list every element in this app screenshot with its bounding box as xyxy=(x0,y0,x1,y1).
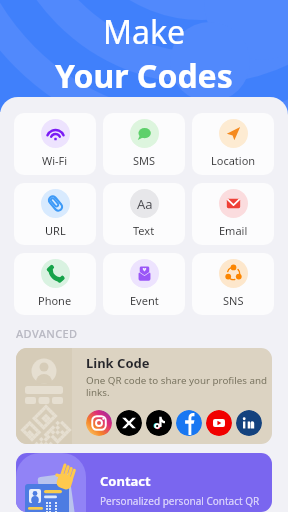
staticText: Location xyxy=(211,153,256,168)
staticText: SNS xyxy=(223,293,244,308)
button[interactable]: Contact xyxy=(16,453,272,512)
button[interactable]: Location xyxy=(192,113,274,175)
button[interactable]: yt xyxy=(206,410,232,436)
button[interactable]: SNS xyxy=(192,253,274,315)
button[interactable]: Email xyxy=(192,183,274,245)
staticText: Aa xyxy=(137,195,153,213)
staticText: SMS xyxy=(133,153,156,168)
button[interactable]: URL xyxy=(14,183,96,245)
button[interactable]: Event xyxy=(103,253,185,315)
button[interactable]: li xyxy=(236,410,262,436)
staticText: Email xyxy=(219,223,248,238)
staticText: Personalized personal Contact QR xyxy=(100,494,260,508)
button[interactable]: ig xyxy=(86,410,112,436)
staticText: One QR code to share your profiles and l… xyxy=(86,374,271,399)
staticText: ADVANCED xyxy=(16,326,78,341)
button[interactable]: x xyxy=(116,410,142,436)
button[interactable]: tt xyxy=(146,410,172,436)
button[interactable]: SMS xyxy=(103,113,185,175)
staticText: Wi-Fi xyxy=(42,153,68,168)
staticText: Contact xyxy=(100,472,151,490)
staticText: Event xyxy=(130,293,159,308)
button[interactable]: Phone xyxy=(14,253,96,315)
button[interactable]: Wi-Fi xyxy=(14,113,96,175)
button[interactable]: Link Code xyxy=(16,348,272,444)
button[interactable]: Aa xyxy=(103,183,185,245)
staticText: Link Code xyxy=(86,354,150,372)
staticText: Your Codes xyxy=(55,54,233,98)
staticText: Text xyxy=(133,223,155,238)
button[interactable]: fb xyxy=(176,410,202,436)
staticText: Make xyxy=(103,10,186,54)
staticText: URL xyxy=(45,223,66,238)
staticText: Phone xyxy=(38,293,72,308)
